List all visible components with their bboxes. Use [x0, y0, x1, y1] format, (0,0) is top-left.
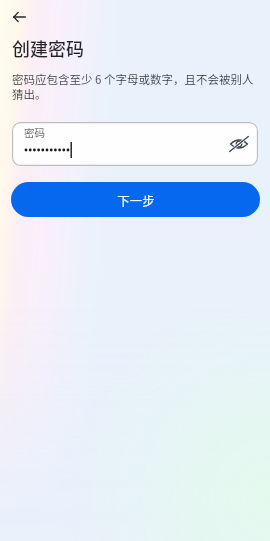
button[interactable]: Show password [226, 131, 252, 157]
button[interactable]: 下一步 [11, 182, 260, 217]
button[interactable]: Back [6, 4, 32, 30]
staticText: 密码 [24, 125, 45, 140]
staticText: 下一步 [117, 191, 155, 209]
staticText: 密码应包含至少 6 个字母或数字，且不会被别人猜出。 [12, 71, 260, 103]
staticText: 创建密码 [12, 35, 84, 61]
button[interactable] [12, 122, 258, 166]
